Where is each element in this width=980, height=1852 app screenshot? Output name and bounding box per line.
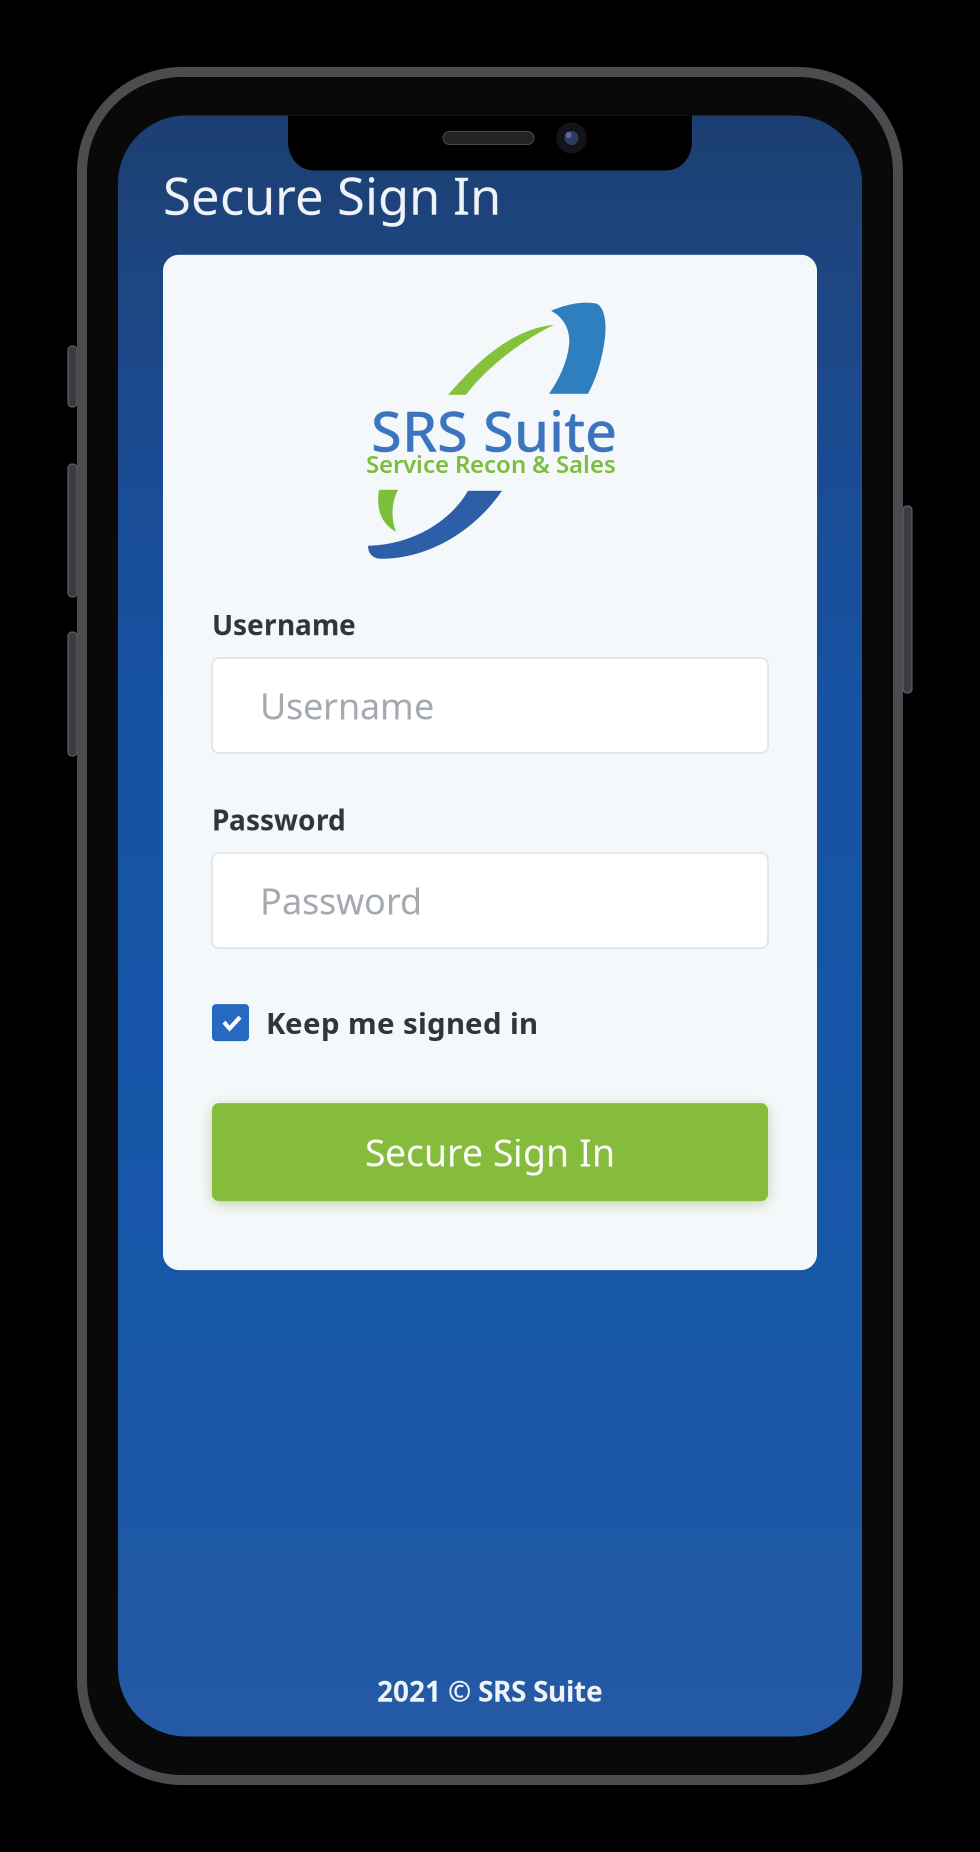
staticText: Username [260, 682, 434, 729]
button[interactable]: Secure Sign In [212, 1103, 768, 1201]
staticText: Secure Sign In [365, 1127, 615, 1177]
button[interactable]: Username [212, 658, 768, 753]
staticText: SRS Suite [371, 393, 617, 467]
staticText: Username [212, 606, 356, 643]
staticText: Service Recon & Sales [366, 448, 616, 480]
staticText: Keep me signed in [266, 1003, 538, 1042]
button[interactable]: Keep me signed in [212, 1003, 768, 1042]
button[interactable]: Password [212, 853, 768, 948]
staticText: Secure Sign In [163, 161, 501, 229]
staticText: Password [212, 801, 346, 838]
staticText: Password [260, 877, 422, 924]
staticText: 2021 © SRS Suite [377, 1672, 603, 1709]
